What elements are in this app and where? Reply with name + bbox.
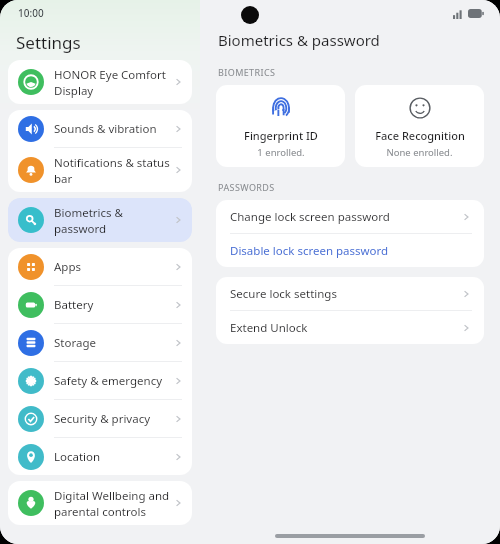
staticText: Disable lock screen password (230, 243, 472, 259)
staticText: Settings (16, 31, 81, 54)
staticText: Secure lock settings (230, 286, 460, 302)
button[interactable]: Location (8, 438, 192, 475)
staticText: Battery (54, 297, 172, 313)
button[interactable]: Storage (8, 324, 192, 361)
staticText: Location (54, 449, 172, 465)
button[interactable]: Secure lock settings (216, 277, 484, 310)
button[interactable]: Extend Unlock (216, 311, 484, 344)
staticText: 10:00 (18, 6, 44, 20)
staticText: None enrolled. (386, 146, 453, 159)
staticText: Change lock screen password (230, 209, 460, 225)
button[interactable]: Disable lock screen password (216, 234, 484, 267)
staticText: Apps (54, 259, 172, 275)
staticText: PASSWORDS (218, 181, 275, 193)
button[interactable]: Biometrics & password (8, 198, 192, 242)
staticText: Digital Wellbeing and parental controls (54, 488, 172, 519)
staticText: Storage (54, 335, 172, 351)
staticText: Extend Unlock (230, 320, 460, 336)
staticText: Biometrics & password (54, 205, 172, 236)
staticText: Safety & emergency (54, 373, 172, 389)
button[interactable]: Apps (8, 248, 192, 285)
staticText: Biometrics & password (218, 30, 380, 50)
staticText: Face Recognition (375, 128, 465, 143)
staticText: Fingerprint ID (244, 128, 318, 143)
staticText: 1 enrolled. (257, 146, 305, 159)
staticText: BIOMETRICS (218, 66, 276, 78)
button[interactable]: Security & privacy (8, 400, 192, 437)
button[interactable]: Face Recognition (355, 85, 484, 167)
staticText: Security & privacy (54, 411, 172, 427)
button[interactable]: Battery (8, 286, 192, 323)
button[interactable]: Notifications & status bar (8, 148, 192, 192)
button[interactable]: Change lock screen password (216, 200, 484, 233)
staticText: Sounds & vibration (54, 121, 172, 137)
staticText: HONOR Eye Comfort Display (54, 67, 172, 98)
button[interactable]: Sounds & vibration (8, 110, 192, 147)
button[interactable]: Safety & emergency (8, 362, 192, 399)
staticText: Notifications & status bar (54, 155, 172, 186)
button[interactable]: Fingerprint ID (216, 85, 345, 167)
button[interactable]: Digital Wellbeing and parental controls (8, 481, 192, 525)
button[interactable]: HONOR Eye Comfort Display (8, 60, 192, 104)
